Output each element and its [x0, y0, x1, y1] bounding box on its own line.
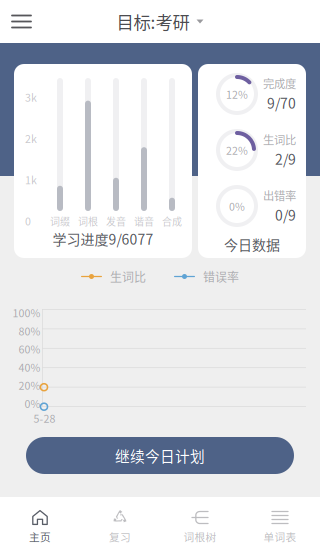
staticText: 9/70: [267, 93, 296, 113]
button[interactable]: 继续今日计划: [26, 437, 294, 474]
staticText: 发音: [106, 214, 126, 228]
staticText: 单词表: [263, 529, 296, 544]
staticText: 22%: [226, 142, 248, 158]
staticText: 1k: [25, 172, 37, 187]
staticText: 80%: [18, 323, 40, 338]
staticText: 生词比: [263, 131, 296, 148]
staticText: 40%: [18, 359, 40, 375]
staticText: 学习进度9/6077: [52, 228, 153, 249]
staticText: 生词比: [110, 268, 146, 285]
staticText: 词根: [78, 214, 98, 228]
staticText: 2k: [25, 131, 37, 146]
staticText: 0%: [229, 198, 245, 214]
staticText: 完成度: [263, 75, 296, 92]
staticText: 12%: [226, 86, 248, 102]
staticText: 0%: [24, 396, 40, 411]
staticText: 词缀: [50, 214, 70, 228]
staticText: 错误率: [203, 268, 239, 285]
staticText: 5-28: [33, 410, 55, 426]
staticText: 0: [25, 213, 31, 228]
button[interactable]: 复习: [80, 497, 160, 546]
button[interactable]: 主页: [0, 497, 80, 546]
button[interactable]: 词根树: [160, 497, 240, 546]
button[interactable]: Menu: [0, 0, 43, 43]
staticText: 3k: [25, 89, 37, 105]
button[interactable]: 单词表: [240, 497, 320, 546]
staticText: 0/9: [275, 205, 296, 225]
staticText: 出错率: [263, 187, 296, 204]
staticText: 60%: [18, 341, 40, 357]
staticText: 20%: [18, 377, 40, 393]
staticText: 词根树: [183, 529, 216, 544]
staticText: 今日数据: [224, 234, 280, 254]
staticText: 目标:考研: [116, 9, 189, 34]
staticText: 2/9: [275, 149, 296, 169]
staticText: 100%: [12, 305, 40, 320]
staticText: 复习: [109, 529, 131, 544]
button[interactable]: 目标:考研: [116, 0, 203, 43]
staticText: 主页: [29, 529, 51, 544]
staticText: 谐音: [134, 214, 154, 228]
staticText: 合成: [162, 214, 182, 228]
staticText: 继续今日计划: [115, 445, 205, 466]
